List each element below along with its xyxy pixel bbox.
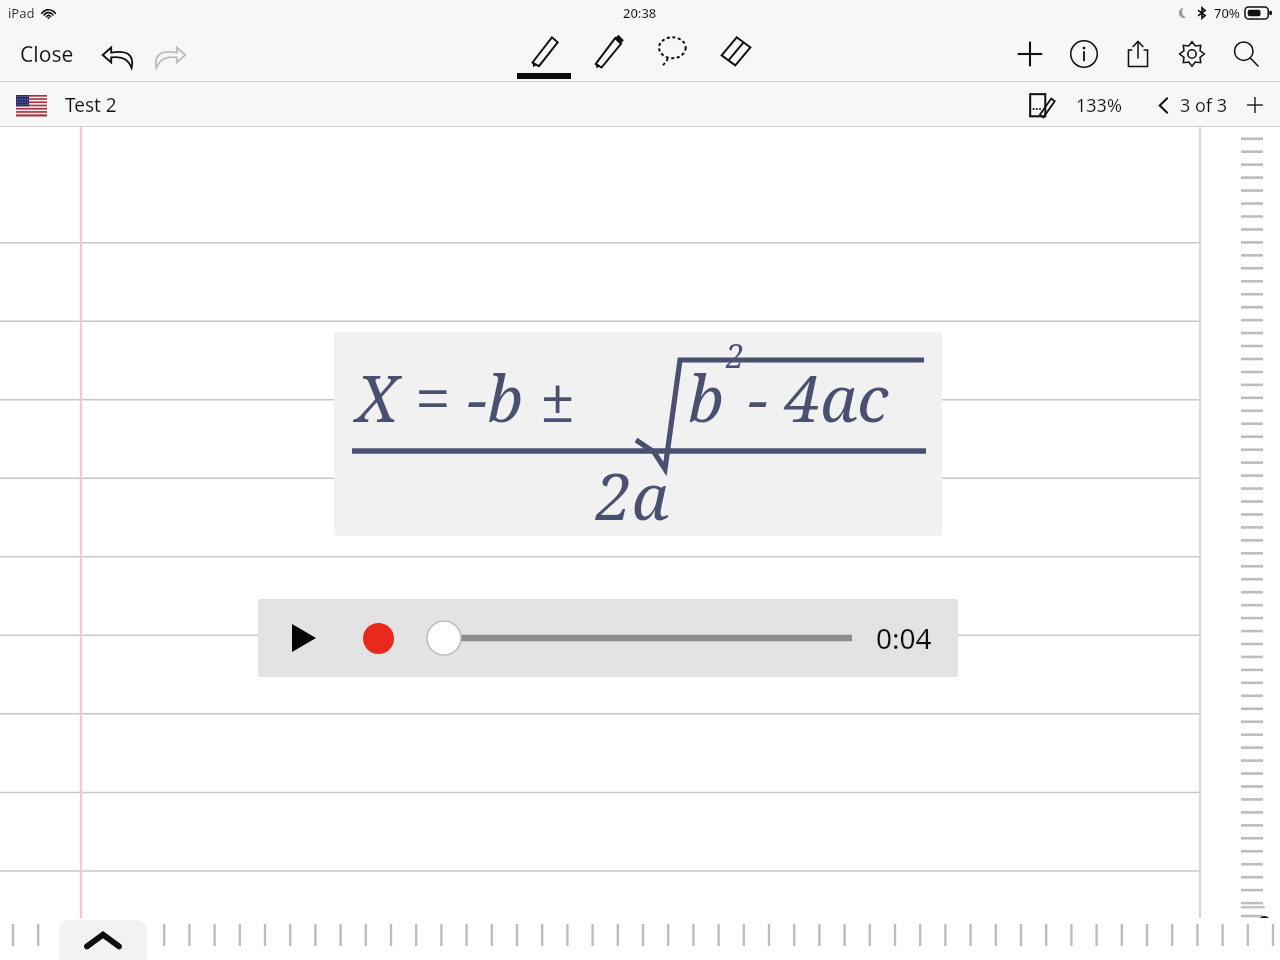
staticText: X = -b ± — [356, 354, 576, 441]
button[interactable]: Lasso select — [645, 26, 699, 82]
staticText: - 4ac — [748, 354, 889, 441]
button[interactable]: Share — [1118, 34, 1158, 74]
button[interactable]: Play — [282, 616, 326, 660]
button[interactable]: Close — [12, 32, 82, 77]
button[interactable]: Pencil — [581, 26, 635, 82]
button[interactable]: Info — [1064, 34, 1104, 74]
button[interactable]: Record — [356, 616, 400, 660]
staticText: iPad — [8, 4, 35, 22]
button[interactable]: Playback position — [422, 599, 862, 677]
staticText: 0:04 — [876, 619, 932, 657]
staticText: 3 of 3 — [1180, 93, 1228, 118]
button[interactable]: Pen — [517, 26, 571, 82]
button[interactable]: Expand toolbar — [59, 920, 147, 960]
button[interactable]: Eraser — [709, 26, 763, 82]
staticText: 20:38 — [623, 4, 657, 22]
button[interactable]: Edit page — [1022, 86, 1060, 124]
staticText: 2 — [726, 334, 744, 378]
button[interactable]: Add — [1010, 34, 1050, 74]
button[interactable]: Quadratic formula image — [334, 332, 942, 536]
staticText: 2a — [596, 452, 669, 536]
staticText: Test 2 — [65, 92, 117, 118]
button[interactable]: Redo — [148, 33, 192, 77]
button[interactable]: Previous page — [1148, 90, 1178, 120]
staticText: 133% — [1076, 93, 1122, 118]
button[interactable]: Undo — [96, 33, 140, 77]
button[interactable]: Add page — [1240, 90, 1270, 120]
staticText: b — [688, 354, 724, 441]
staticText: Close — [20, 40, 74, 69]
button[interactable]: Search — [1226, 34, 1266, 74]
staticText: 70% — [1214, 4, 1240, 22]
button[interactable]: Test 2 — [0, 86, 129, 124]
button[interactable]: Settings — [1172, 34, 1212, 74]
